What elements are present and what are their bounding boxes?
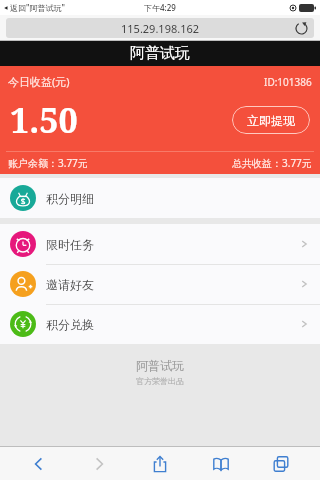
button[interactable]: Tabs xyxy=(259,449,303,479)
staticText: 今日收益(元) xyxy=(8,74,70,89)
staticText: 1.50 xyxy=(10,97,78,143)
staticText: 下午4:29 xyxy=(144,2,176,13)
staticText: 账户余额：3.77元 xyxy=(8,156,88,170)
staticText: 邀请好友 xyxy=(46,277,94,292)
staticText: 阿普试玩 xyxy=(130,44,190,63)
staticText: 阿普试玩 xyxy=(136,358,184,373)
button[interactable]: Back xyxy=(17,449,61,479)
button[interactable]: 立即提现 xyxy=(232,106,310,134)
button[interactable]: Forward xyxy=(77,449,121,479)
button[interactable]: 积分明细 xyxy=(0,178,320,218)
staticText: 总共收益：3.77元 xyxy=(232,156,312,170)
staticText: 限时任务 xyxy=(46,237,94,252)
staticText: 115.29.198.162 xyxy=(121,21,200,36)
button[interactable]: 积分兑换 xyxy=(0,304,320,344)
staticText: 官方荣誉出品 xyxy=(136,376,184,386)
button[interactable]: 邀请好友 xyxy=(0,264,320,304)
button[interactable]: Reload xyxy=(294,21,308,35)
staticText: 积分兑换 xyxy=(46,317,94,332)
staticText: 返回"阿普试玩" xyxy=(10,2,65,13)
button[interactable]: 115.29.198.162 xyxy=(6,18,314,38)
staticText: 积分明细 xyxy=(46,191,94,206)
button[interactable]: Bookmarks xyxy=(199,449,243,479)
staticText: ID:101386 xyxy=(264,75,312,89)
button[interactable]: 限时任务 xyxy=(0,224,320,264)
staticText: 立即提现 xyxy=(247,113,295,128)
button[interactable]: Share xyxy=(138,449,182,479)
